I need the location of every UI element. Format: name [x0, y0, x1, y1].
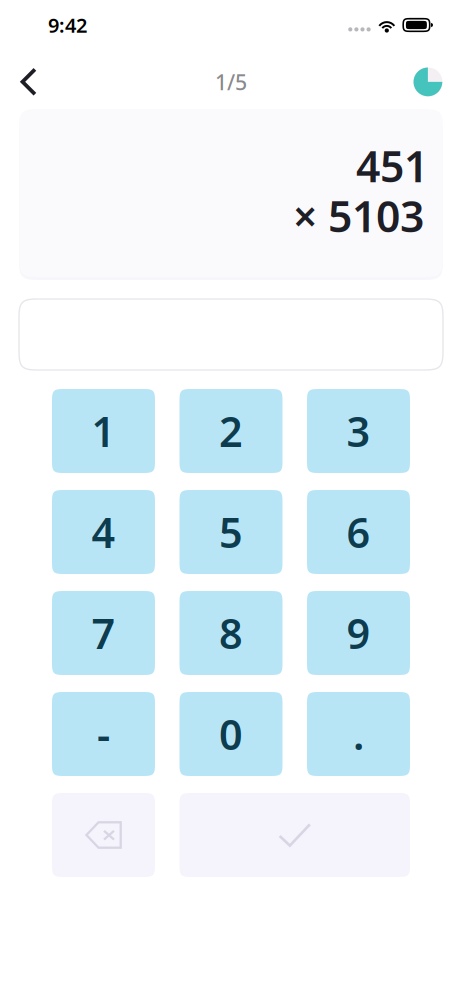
staticText: 7: [91, 606, 115, 660]
button[interactable]: -: [52, 692, 155, 776]
button[interactable]: 1: [52, 389, 155, 473]
button[interactable]: 7: [52, 591, 155, 675]
button[interactable]: Delete: [52, 793, 155, 877]
staticText: 5: [219, 505, 243, 559]
staticText: 1/5: [215, 68, 247, 96]
button[interactable]: 8: [179, 591, 282, 675]
button[interactable]: 5: [179, 490, 282, 574]
staticText: 451: [356, 137, 428, 194]
button[interactable]: .: [307, 692, 410, 776]
staticText: 9:42: [48, 12, 87, 38]
button[interactable]: 0: [179, 692, 282, 776]
staticText: 1: [91, 404, 115, 458]
button[interactable]: 2: [179, 389, 282, 473]
button[interactable]: 3: [307, 389, 410, 473]
button[interactable]: 6: [307, 490, 410, 574]
staticText: 4: [91, 505, 115, 559]
staticText: × 5103: [293, 187, 424, 244]
button[interactable]: Back: [7, 46, 51, 110]
button[interactable]: 4: [52, 490, 155, 574]
staticText: 6: [346, 505, 370, 559]
button[interactable]: Progress: [406, 46, 450, 110]
button[interactable]: 9: [307, 591, 410, 675]
staticText: -: [97, 707, 110, 761]
staticText: .: [353, 707, 364, 761]
staticText: 3: [346, 404, 370, 458]
staticText: 2: [219, 404, 243, 458]
staticText: 9: [346, 606, 370, 660]
staticText: 0: [219, 707, 243, 761]
staticText: 8: [219, 606, 243, 660]
